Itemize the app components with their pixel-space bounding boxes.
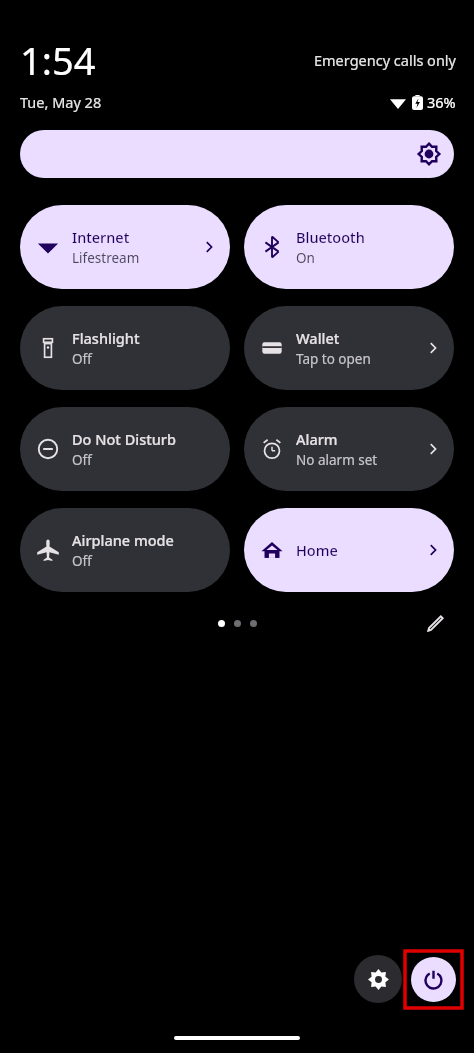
button[interactable]: Do Not Disturb [20,407,230,491]
button[interactable]: Airplane mode [20,508,230,592]
button[interactable]: Bluetooth [244,205,454,289]
button[interactable]: Wallet [244,306,454,390]
staticText: Internet [72,227,130,247]
button[interactable]: Brightness [20,130,454,178]
button[interactable]: Edit tiles [420,608,450,638]
button[interactable]: Internet [20,205,230,289]
staticText: Do Not Disturb [72,429,176,449]
staticText: Off [72,350,92,368]
staticText: Off [72,451,92,469]
staticText: Flashlight [72,328,140,348]
staticText: Home [296,540,338,560]
staticText: 1:54 [20,34,96,86]
staticText: Lifestream [72,249,140,267]
staticText: On [296,249,315,267]
staticText: Bluetooth [296,227,365,247]
button[interactable]: Settings [354,955,402,1003]
staticText: Alarm [296,429,338,449]
staticText: No alarm set [296,451,378,469]
staticText: Wallet [296,328,340,348]
staticText: Tue, May 28 [20,92,102,112]
staticText: Emergency calls only [314,50,456,70]
button[interactable]: Flashlight [20,306,230,390]
staticText: 36% [427,92,456,112]
staticText: Tap to open [296,350,371,368]
button[interactable]: Alarm [244,407,454,491]
staticText: Off [72,552,92,570]
button[interactable]: Power [411,957,456,1002]
staticText: Airplane mode [72,530,174,550]
button[interactable]: Home [244,508,454,592]
